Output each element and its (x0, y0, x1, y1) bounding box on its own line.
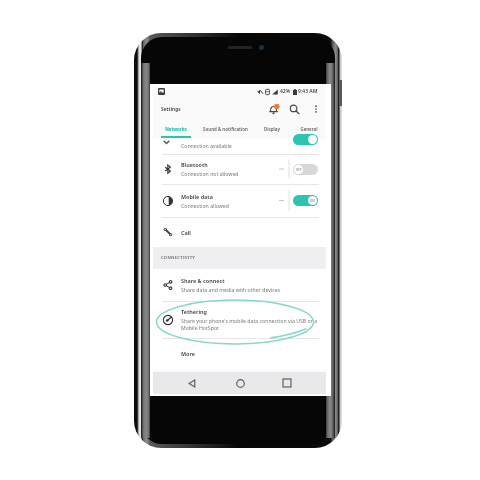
button[interactable]: Recents (278, 374, 296, 392)
button[interactable]: More options (309, 102, 323, 116)
staticText: General (300, 126, 318, 132)
button[interactable]: Share & connect (153, 269, 326, 301)
staticText: 9:43 AM (298, 88, 318, 95)
button[interactable]: Switch off (293, 164, 318, 175)
staticText: 42% (280, 88, 291, 95)
staticText: Share data and media with other devices (181, 286, 281, 293)
button[interactable]: Mobile data (153, 184, 326, 217)
button[interactable]: Sound & notification (195, 122, 255, 138)
staticText: More (181, 350, 195, 357)
staticText: Sound & notification (203, 126, 248, 132)
staticText: Networks (165, 126, 187, 132)
staticText: Share your phone's mobile data connectio… (181, 317, 323, 331)
button[interactable]: Bluetooth (153, 154, 326, 184)
staticText: CONNECTIVITY (161, 255, 196, 261)
staticText: Tethering (181, 308, 207, 315)
button[interactable]: Back (183, 374, 201, 392)
staticText: Connection available (181, 142, 232, 149)
staticText: Share & connect (181, 277, 225, 284)
staticText: Bluetooth (181, 161, 208, 168)
button[interactable]: Display (257, 122, 287, 138)
staticText: Display (264, 126, 280, 132)
staticText: Settings (161, 106, 181, 113)
staticText: Mobile data (181, 193, 213, 200)
button[interactable]: Call (153, 217, 326, 247)
staticText: Call (181, 229, 191, 236)
button[interactable]: Notifications (265, 101, 282, 118)
staticText: OFF (296, 168, 302, 172)
button[interactable]: Networks (161, 122, 191, 138)
button[interactable]: Search (286, 101, 303, 118)
staticText: ON (310, 199, 315, 203)
button[interactable]: General (293, 122, 325, 138)
staticText: Connection not allowed (181, 170, 239, 177)
button[interactable]: More (153, 338, 326, 368)
button[interactable]: Switch on (293, 195, 318, 206)
button[interactable]: Home (231, 374, 249, 392)
button[interactable]: Tethering (153, 301, 326, 338)
staticText: Connection allowed (181, 202, 229, 209)
